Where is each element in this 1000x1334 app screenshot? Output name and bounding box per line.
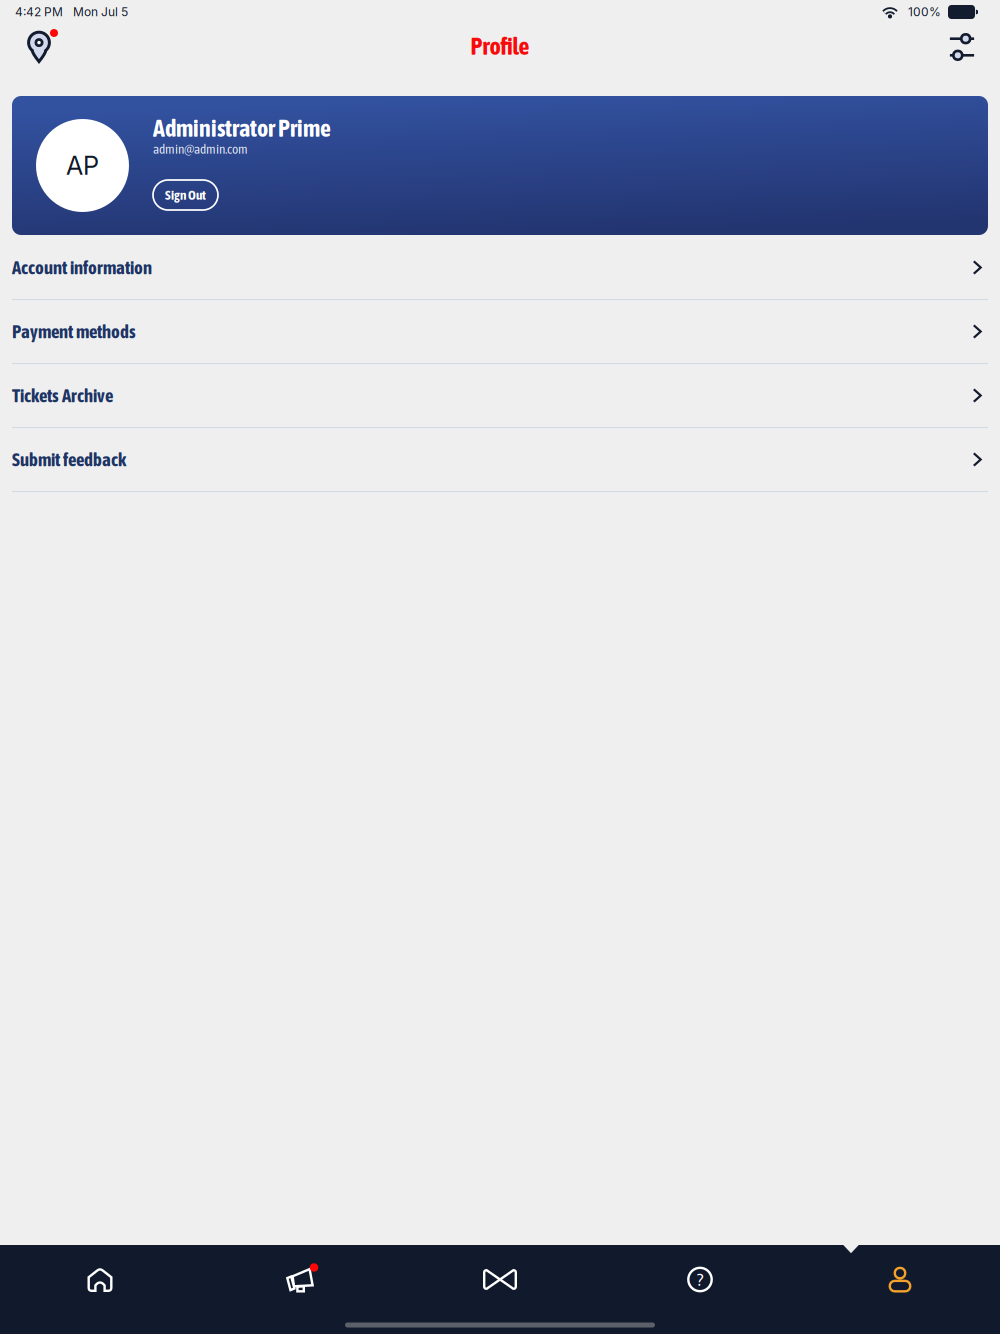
- staticText: Administrator Prime: [153, 114, 331, 142]
- staticText: Submit feedback: [12, 449, 126, 470]
- button[interactable]: Profile: [800, 1252, 1000, 1306]
- staticText: 100%: [908, 5, 941, 19]
- button[interactable]: Account information: [0, 236, 1000, 300]
- staticText: Mon Jul 5: [73, 5, 128, 19]
- staticText: ?: [697, 1270, 703, 1289]
- staticText: Payment methods: [12, 321, 136, 342]
- button[interactable]: Tickets: [400, 1252, 600, 1306]
- staticText: Profile: [470, 32, 529, 60]
- button[interactable]: Sign Out: [153, 180, 218, 210]
- button[interactable]: Settings: [944, 29, 980, 65]
- button[interactable]: Home: [0, 1252, 200, 1306]
- staticText: Sign Out: [165, 187, 206, 203]
- staticText: Account information: [12, 257, 152, 278]
- button[interactable]: Submit feedback: [0, 428, 1000, 492]
- staticText: admin@admin.com: [153, 141, 248, 157]
- button[interactable]: Payment methods: [0, 300, 1000, 364]
- staticText: AP: [66, 150, 99, 181]
- staticText: 4:42 PM: [15, 5, 63, 19]
- button[interactable]: Announcements: [200, 1252, 400, 1306]
- button[interactable]: Location: [17, 28, 61, 66]
- button[interactable]: Help: [600, 1252, 800, 1306]
- staticText: Tickets Archive: [12, 385, 113, 406]
- button[interactable]: Tickets Archive: [0, 364, 1000, 428]
